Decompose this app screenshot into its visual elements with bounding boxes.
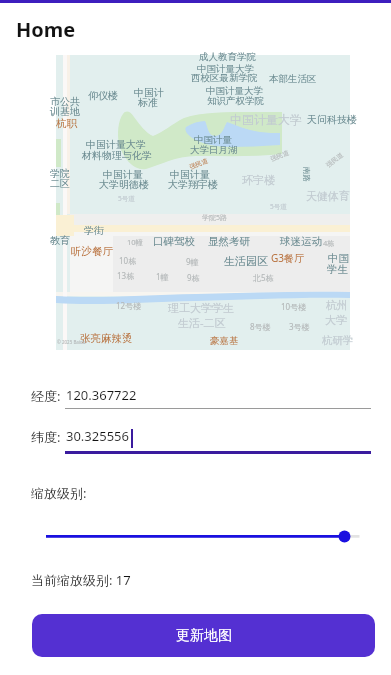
staticText: 120.367722 (66, 386, 137, 404)
staticText: G3餐厅 (271, 251, 304, 265)
staticText: 张亮麻辣烫 (80, 332, 133, 345)
staticText: 二区 (50, 177, 70, 190)
staticText: 生活-二区 (178, 315, 226, 330)
staticText: 理工大学学生 (168, 301, 234, 315)
staticText: 强民道 (188, 156, 210, 171)
staticText: 生活园区 (224, 254, 268, 268)
staticText: 学院5路 (202, 213, 228, 223)
staticText: 中国计量大学 (86, 138, 146, 151)
staticText: 5号道 (270, 202, 287, 211)
staticText: 中国计量 (170, 168, 210, 181)
staticText: 西校区最新学院 (191, 72, 258, 84)
staticText: 口碑驾校 (153, 235, 195, 248)
staticText: 大学 (325, 313, 347, 327)
staticText: 中国计量大学 (206, 85, 263, 97)
staticText: 仰仪楼 (88, 89, 118, 102)
staticText: 10号楼 (281, 301, 307, 312)
staticText: 中国计 (134, 86, 164, 99)
staticText: 成人教育学院 (199, 51, 256, 63)
staticText: 更新地图 (176, 627, 232, 645)
staticText: © 2025 Baidu (57, 339, 86, 345)
staticText: 天健体育 (306, 189, 350, 203)
staticText: 8号楼 (250, 321, 271, 332)
staticText: 9栋 (187, 272, 200, 283)
staticText: 3号楼 (289, 321, 310, 332)
staticText: 北5栋 (253, 272, 274, 283)
staticText: 中国计量大学 (230, 112, 302, 127)
staticText: 当前缩放级别: 17 (31, 571, 131, 589)
staticText: 9幢 (186, 256, 199, 267)
staticText: Home (16, 16, 76, 43)
staticText: 杭州 (326, 298, 348, 312)
staticText: 中国计量大学 (197, 63, 254, 75)
staticText: 12号楼 (116, 300, 142, 311)
staticText: 纬度: (31, 428, 61, 446)
staticText: 南路 (302, 167, 311, 182)
staticText: 大学翔宇楼 (168, 178, 218, 191)
staticText: 强民道 (325, 151, 345, 169)
staticText: 知识产权学院 (207, 95, 264, 107)
staticText: 30.325556 (66, 427, 129, 445)
staticText: 训基地 (50, 105, 80, 118)
staticText: 经度: (31, 387, 61, 405)
staticText: 10幢 (127, 237, 144, 247)
staticText: 教育 (50, 234, 70, 247)
staticText: 学院 (50, 167, 70, 180)
staticText: 杭职 (56, 117, 77, 130)
staticText: 市公共 (50, 95, 80, 108)
staticText: 本部生活区 (269, 73, 317, 85)
staticText: 4栋 (323, 238, 335, 248)
staticText: 10栋 (119, 255, 137, 266)
staticText: 大学明德楼 (99, 178, 149, 191)
staticText: 1幢 (156, 271, 169, 282)
staticText: 学街 (84, 224, 104, 237)
staticText: 中国计量 (194, 134, 232, 146)
staticText: 材料物理与化学 (82, 149, 152, 162)
staticText: 球迷运动 (280, 235, 322, 248)
staticText: 杭研学 (322, 334, 354, 347)
staticText: 大学日月湖 (190, 144, 238, 156)
staticText: 豪嘉基 (210, 335, 239, 347)
staticText: 听沙餐厅 (71, 245, 113, 258)
staticText: 显然考研 (208, 235, 250, 248)
staticText: 13栋 (117, 270, 135, 281)
staticText: 标准 (138, 96, 158, 109)
staticText: 强民道 (269, 148, 291, 163)
button[interactable]: 更新地图 (32, 614, 375, 657)
button[interactable] (31, 524, 371, 548)
staticText: 天问科技楼 (307, 113, 357, 126)
staticText: 5号道 (118, 194, 135, 203)
staticText: 缩放级别: (31, 484, 87, 502)
staticText: 中国计量 (103, 168, 143, 181)
staticText: 环宇楼 (242, 173, 275, 187)
staticText: 学生 (327, 263, 348, 276)
staticText: 中国 (328, 252, 349, 265)
